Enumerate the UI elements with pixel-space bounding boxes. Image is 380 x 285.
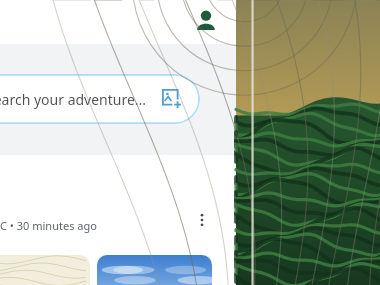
button[interactable]: Map photo (0, 255, 90, 285)
button[interactable]: More options (186, 204, 218, 236)
button[interactable]: Add image (158, 85, 186, 113)
button[interactable]: Account (186, 0, 226, 40)
staticText: Search your adventure... (0, 90, 147, 109)
staticText: C • 30 minutes ago (0, 218, 97, 233)
button[interactable]: Sky photo (97, 255, 212, 285)
button[interactable]: Search your adventure... (0, 74, 200, 124)
